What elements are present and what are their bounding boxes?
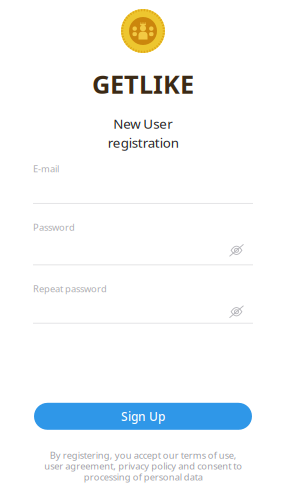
staticText: Password — [33, 221, 75, 233]
button[interactable]: Show password — [229, 244, 244, 256]
staticText: E-mail — [33, 163, 59, 175]
staticText: Repeat password — [33, 282, 107, 295]
staticText: Sign Up — [121, 408, 165, 424]
staticText: By registering, you accept our terms of … — [44, 449, 242, 483]
staticText: GETLIKE — [92, 67, 194, 101]
button[interactable]: Show repeat password — [229, 306, 244, 318]
staticText: New User registration — [107, 115, 178, 151]
button[interactable]: Sign Up — [34, 403, 252, 430]
